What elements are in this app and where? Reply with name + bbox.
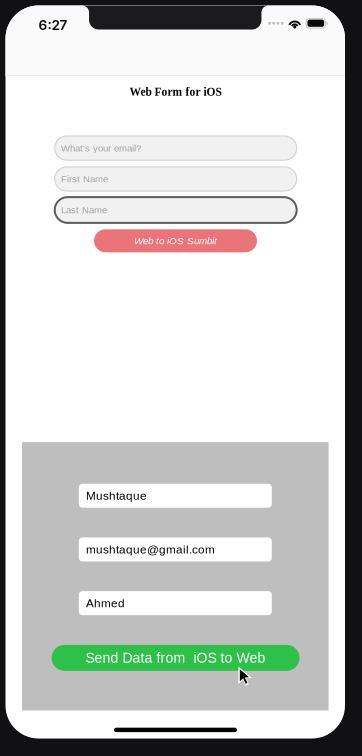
staticText: Last Name <box>61 205 107 215</box>
staticText: Send Data from iOS to Web <box>86 650 266 666</box>
button[interactable]: First Name <box>55 167 297 191</box>
button[interactable]: Last Name <box>55 197 297 223</box>
button[interactable]: Ahmed <box>79 591 272 615</box>
button[interactable]: What's your email? <box>55 136 297 160</box>
button[interactable]: mushtaque@gmail.com <box>79 537 272 561</box>
staticText: Mushtaque <box>86 489 147 502</box>
staticText: Web to iOS Sumbit <box>134 235 217 246</box>
staticText: First Name <box>61 174 108 184</box>
staticText: mushtaque@gmail.com <box>86 543 215 556</box>
staticText: What's your email? <box>61 143 141 153</box>
button[interactable]: Web to iOS Sumbit <box>94 229 257 252</box>
staticText: 6:27 <box>39 17 68 33</box>
staticText: Ahmed <box>86 597 125 610</box>
button[interactable]: Send Data from iOS to Web <box>52 645 300 671</box>
button[interactable]: Mushtaque <box>79 484 272 508</box>
staticText: Web Form for iOS <box>129 86 221 98</box>
